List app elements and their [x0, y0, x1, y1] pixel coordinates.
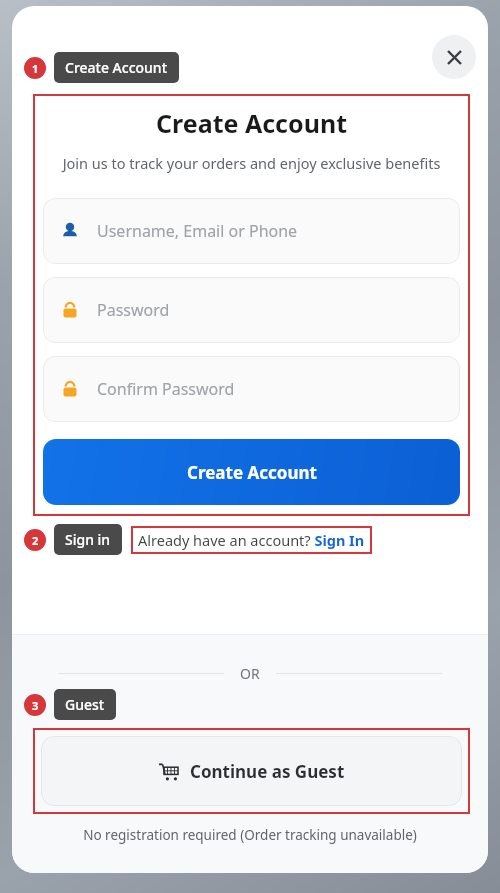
button[interactable]: Close	[432, 35, 476, 79]
staticText: 1	[32, 61, 39, 76]
staticText: Already have an account? Sign In	[138, 530, 365, 550]
button[interactable]: Sign in	[65, 530, 111, 549]
staticText: Sign in	[65, 530, 111, 549]
staticText: Join us to track your orders and enjoy e…	[43, 153, 460, 173]
button[interactable]: Username, Email or Phone	[43, 198, 460, 264]
button[interactable]: Password	[43, 277, 460, 343]
staticText: Create Account	[187, 461, 317, 484]
button[interactable]: Create Account	[43, 439, 460, 505]
staticText: Continue as Guest	[190, 760, 345, 783]
staticText: Guest	[65, 695, 105, 714]
staticText: OR	[240, 664, 260, 683]
staticText: 3	[32, 698, 39, 713]
staticText: Create Account	[65, 58, 168, 77]
button[interactable]: Create Account	[65, 58, 168, 77]
staticText: Confirm Password	[97, 378, 235, 400]
staticText: Password	[97, 299, 170, 321]
staticText: No registration required (Order tracking…	[12, 826, 488, 844]
staticText: Create Account	[43, 106, 460, 140]
staticText: Username, Email or Phone	[97, 220, 298, 242]
button[interactable]: Guest	[65, 695, 105, 714]
button[interactable]: Continue as Guest	[41, 736, 462, 806]
button[interactable]: Already have an account? Sign In	[138, 530, 365, 550]
staticText: 2	[32, 533, 39, 548]
button[interactable]: Confirm Password	[43, 356, 460, 422]
